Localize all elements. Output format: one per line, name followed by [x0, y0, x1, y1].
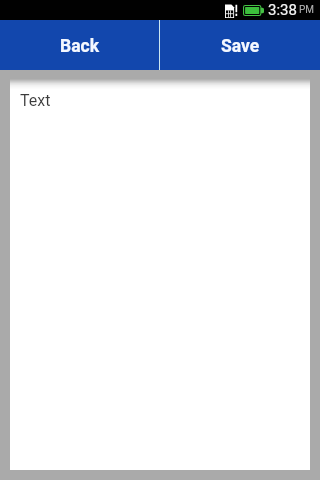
staticText: Back [60, 36, 100, 57]
staticText: 3:38 [268, 1, 297, 19]
button[interactable]: Save [160, 20, 320, 70]
staticText: PM [299, 4, 315, 16]
button[interactable]: Back [0, 20, 159, 70]
staticText: Save [221, 36, 260, 57]
staticText: Text [20, 91, 51, 110]
button[interactable]: Note text field [10, 78, 310, 470]
